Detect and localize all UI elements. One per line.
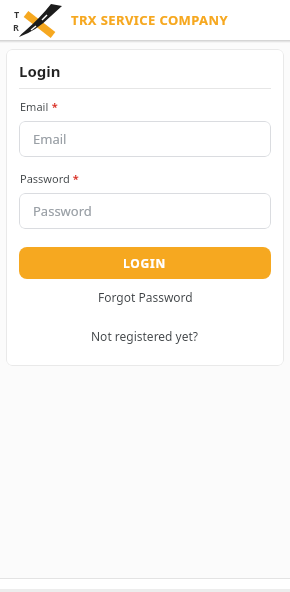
staticText: T [14, 8, 20, 20]
button[interactable]: Not registered yet? [19, 327, 271, 345]
staticText: TRX SERVICE COMPANY [71, 11, 228, 29]
staticText: R [13, 21, 19, 33]
staticText: * [70, 171, 79, 186]
staticText: Email [20, 99, 49, 114]
staticText: * [49, 99, 58, 114]
button[interactable]: Email [19, 121, 271, 157]
button[interactable]: LOGIN [19, 247, 271, 279]
staticText: Login [19, 61, 61, 81]
staticText: Not registered yet? [91, 328, 199, 344]
button[interactable]: Password [19, 193, 271, 229]
staticText: Email [33, 130, 67, 148]
staticText: Forgot Password [98, 289, 193, 305]
staticText: Password [20, 171, 70, 186]
staticText: Password [33, 202, 92, 220]
staticText: LOGIN [123, 255, 167, 271]
button[interactable]: Forgot Password [19, 288, 271, 306]
